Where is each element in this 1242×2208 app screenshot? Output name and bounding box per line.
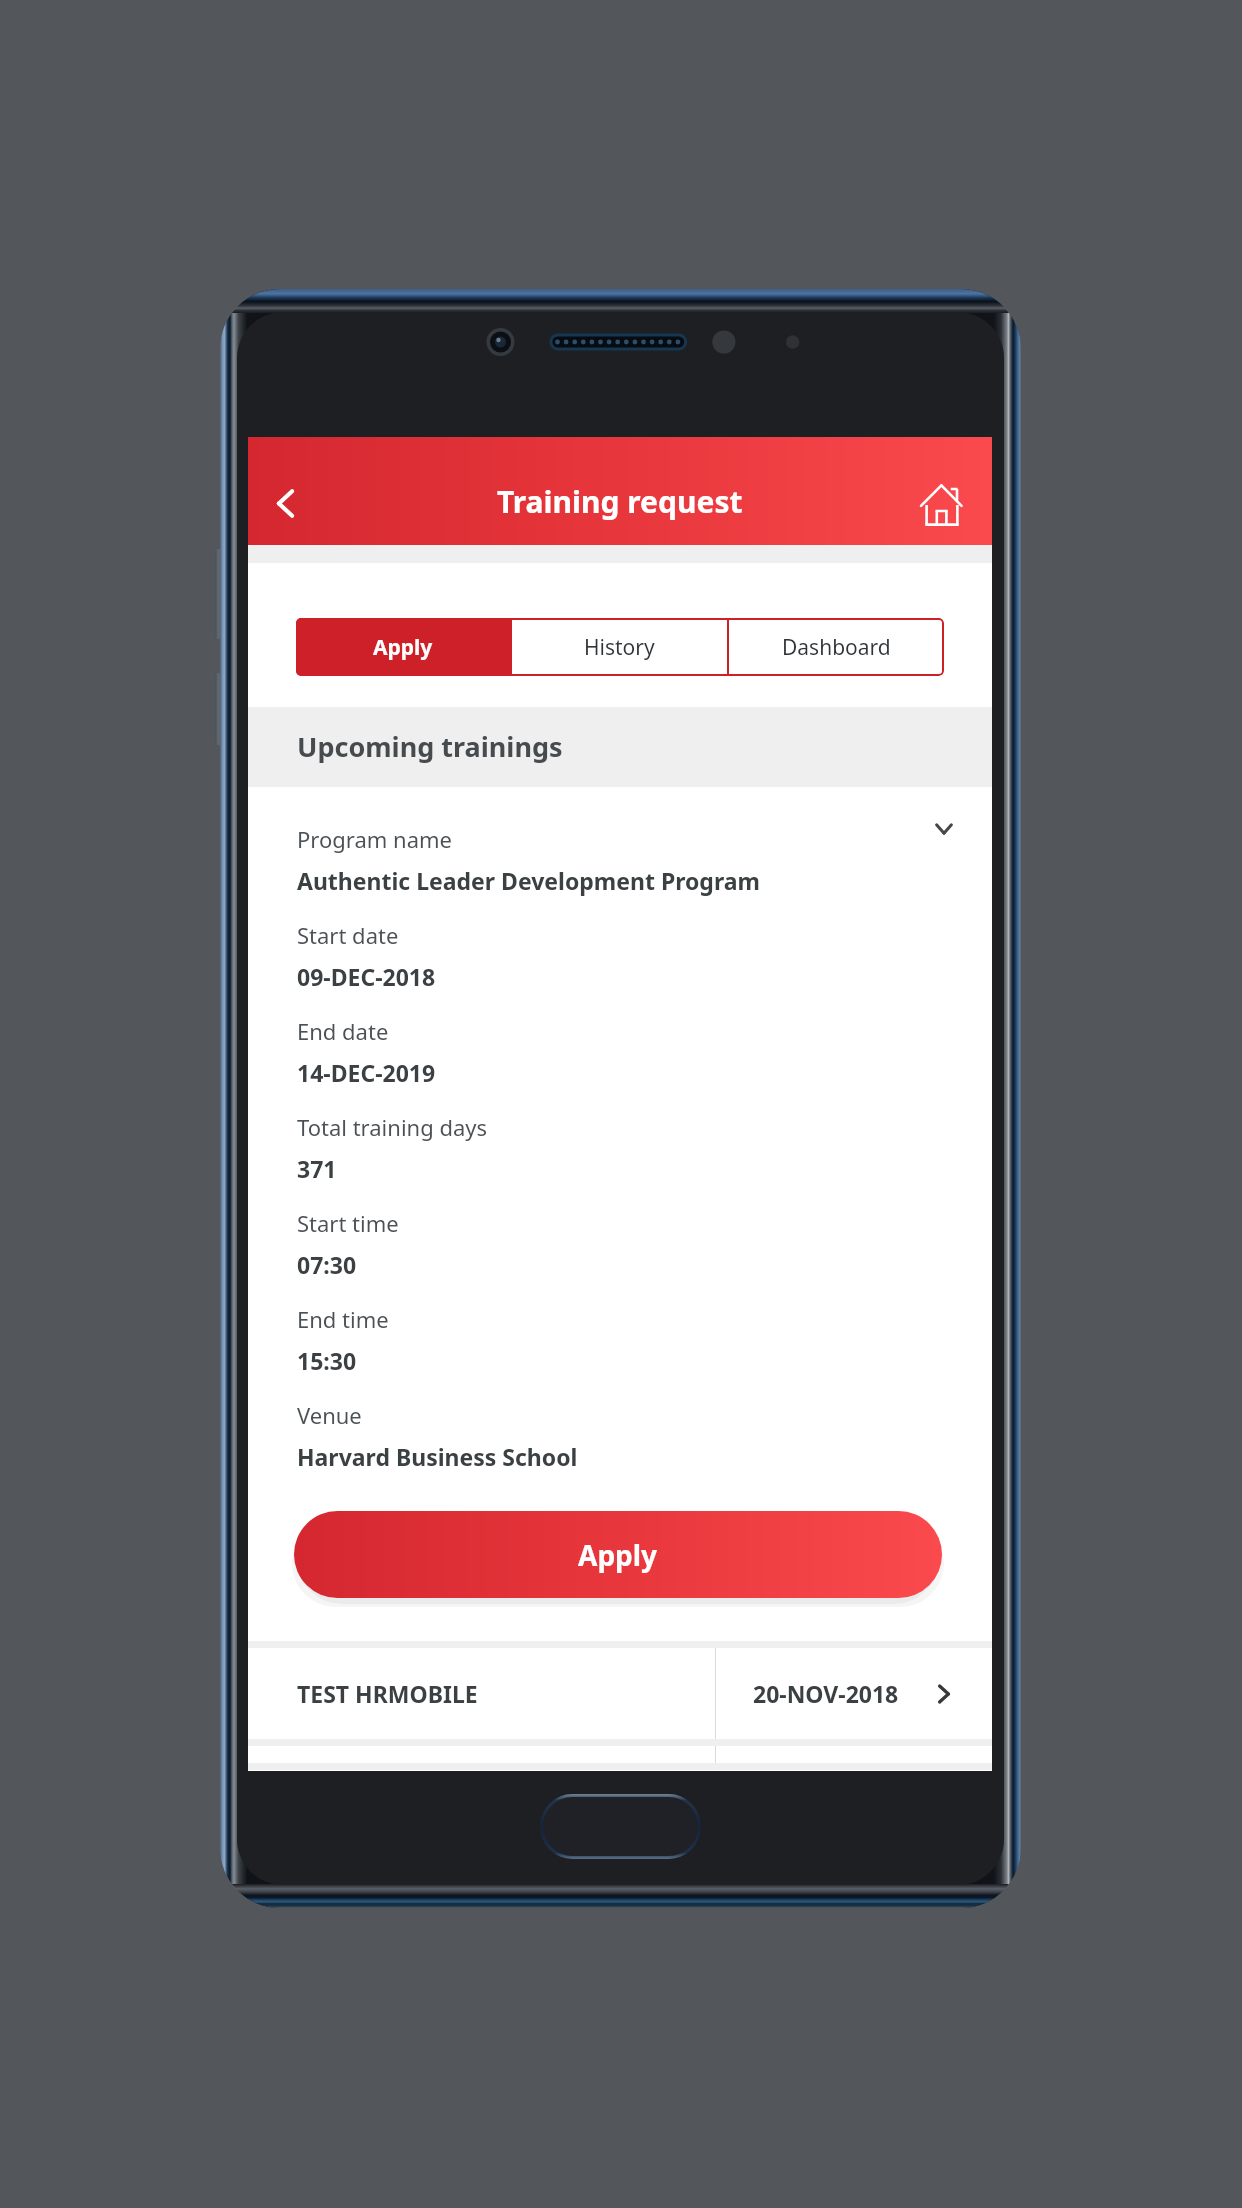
staticText: Upcoming trainings [297, 728, 563, 765]
staticText: Dashboard [782, 633, 891, 662]
staticText: TEST HRMOBILE [297, 1678, 478, 1709]
button[interactable]: Home [902, 437, 978, 545]
staticText: 371 [297, 1153, 337, 1184]
staticText: Apply [373, 633, 433, 662]
button[interactable]: Back [251, 437, 323, 545]
button[interactable]: Apply [296, 618, 510, 676]
staticText: 07:30 [297, 1249, 357, 1280]
staticText: End time [297, 1304, 389, 1334]
button[interactable]: Apply [294, 1511, 942, 1598]
staticText: 20-NOV-2018 [753, 1678, 899, 1709]
button[interactable]: TEST HRMOBILE [248, 1648, 992, 1739]
staticText: Start date [297, 920, 399, 950]
staticText: Apply [578, 1536, 658, 1574]
staticText: 15:30 [297, 1345, 357, 1376]
staticText: Harvard Business School [297, 1441, 578, 1472]
staticText: 14-DEC-2019 [297, 1057, 436, 1088]
staticText: History [584, 633, 655, 662]
staticText: Total training days [297, 1112, 488, 1142]
staticText: Start time [297, 1208, 399, 1238]
staticText: Training request [497, 481, 743, 522]
button[interactable]: Dashboard [729, 618, 944, 676]
staticText: End date [297, 1016, 389, 1046]
staticText: 09-DEC-2018 [297, 961, 436, 992]
staticText: Program name [297, 824, 452, 854]
button[interactable]: Collapse [916, 803, 970, 857]
staticText: Authentic Leader Development Program [297, 865, 760, 896]
staticText: Venue [297, 1400, 362, 1430]
button[interactable]: History [512, 618, 727, 676]
